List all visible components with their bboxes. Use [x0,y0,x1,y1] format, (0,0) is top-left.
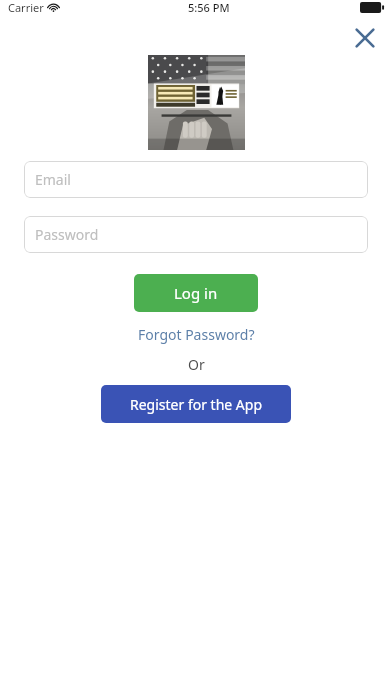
staticText: Log in [174,283,218,303]
staticText: Password [35,225,99,244]
staticText: Or [188,355,205,374]
button[interactable]: Email [24,161,368,198]
staticText: 5:56 PM [188,0,230,15]
staticText: Carrier [8,0,44,15]
button[interactable]: Log in [134,274,258,312]
button[interactable]: Register for the App [101,385,291,423]
staticText: Forgot Password? [138,325,255,344]
button[interactable]: Password [24,216,368,253]
button[interactable]: Close [348,21,382,55]
staticText: Register for the App [130,395,263,414]
staticText: Email [35,170,71,189]
button[interactable]: Forgot Password? [130,322,263,347]
